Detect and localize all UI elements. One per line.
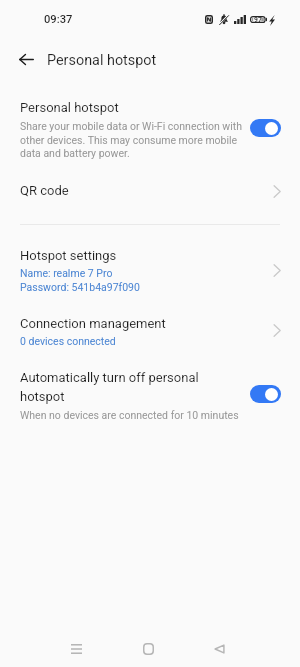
staticText: Automatically turn off personal hotspot <box>20 370 246 404</box>
staticText: 09:37 <box>44 13 73 26</box>
button[interactable]: Connection management <box>0 309 300 355</box>
button[interactable]: Recent apps <box>57 629 96 667</box>
button[interactable]: Hotspot settings <box>0 240 300 296</box>
staticText: When no devices are connected for 10 min… <box>20 409 250 421</box>
button[interactable]: Back <box>200 629 239 667</box>
button[interactable]: Personal hotspot <box>0 93 300 163</box>
staticText: Personal hotspot <box>47 52 157 69</box>
button[interactable]: Home <box>129 629 168 667</box>
staticText: Share your mobile data or Wi-Fi connecti… <box>20 120 246 159</box>
button[interactable]: Toggle <box>250 385 281 403</box>
staticText: 97 <box>254 16 262 24</box>
staticText: Name: realme 7 Pro Password: 541b4a97f09… <box>20 267 140 293</box>
button[interactable]: Toggle <box>250 119 281 137</box>
button[interactable]: Back <box>12 45 40 73</box>
staticText: QR code <box>20 183 69 198</box>
button[interactable]: QR code <box>0 176 300 210</box>
button[interactable]: Automatically turn off personal hotspot <box>0 359 300 421</box>
staticText: Connection management <box>20 316 166 331</box>
staticText: 0 devices connected <box>20 335 116 347</box>
staticText: Personal hotspot <box>20 100 119 115</box>
staticText: Hotspot settings <box>20 248 117 263</box>
